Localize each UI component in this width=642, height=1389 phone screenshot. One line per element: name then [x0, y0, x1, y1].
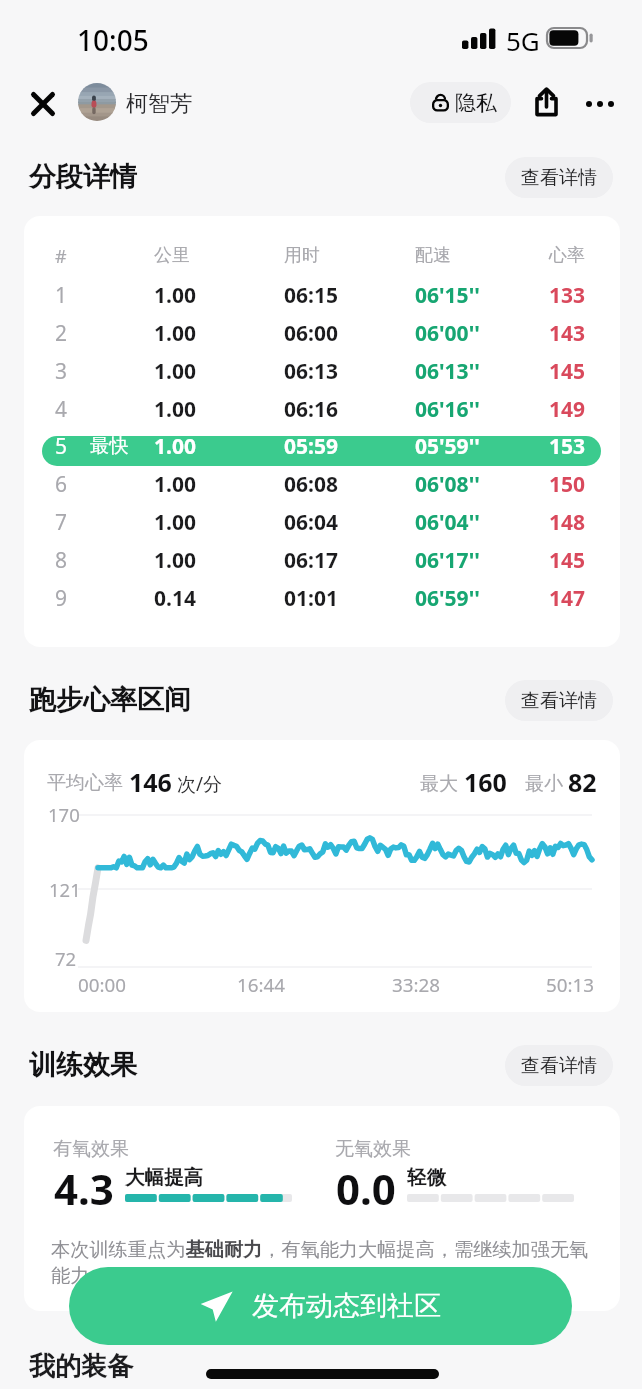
staticText: 查看详情 — [521, 689, 597, 713]
staticText: 4.3 — [54, 1160, 114, 1217]
staticText: 01:01 — [284, 584, 338, 613]
staticText: 查看详情 — [521, 1054, 597, 1078]
staticText: 8 — [55, 546, 68, 575]
staticText: 7 — [55, 508, 68, 537]
staticText: 06'16'' — [415, 395, 480, 424]
staticText: 121 — [49, 877, 81, 902]
staticText: 跑步心率区间 — [29, 683, 191, 717]
staticText: 16:44 — [237, 972, 286, 998]
staticText: 有氧效果 — [53, 1137, 129, 1161]
staticText: 5 — [55, 432, 68, 461]
button[interactable]: More options — [565, 80, 613, 128]
staticText: 用时 — [284, 244, 320, 267]
staticText: 148 — [465, 508, 585, 537]
staticText: 170 — [48, 802, 80, 827]
staticText: 1.00 — [154, 395, 196, 424]
staticText: 06'04'' — [415, 508, 480, 537]
staticText: 1 — [55, 281, 68, 310]
staticText: 配速 — [415, 244, 451, 267]
staticText: 柯智芳 — [126, 90, 192, 118]
staticText: 160 — [464, 765, 507, 799]
staticText: 153 — [465, 432, 585, 461]
staticText: 05'59'' — [415, 432, 480, 461]
staticText: 133 — [465, 281, 585, 310]
staticText: 轻微 — [407, 1165, 446, 1190]
staticText: 05:59 — [284, 432, 338, 461]
staticText: 心率 — [465, 244, 585, 267]
staticText: 训练效果 — [29, 1048, 137, 1082]
staticText: 00:00 — [78, 972, 127, 998]
staticText: 4 — [55, 395, 68, 424]
staticText: 大幅提高 — [125, 1165, 203, 1190]
staticText: 06:15 — [284, 281, 338, 310]
staticText: 无氧效果 — [335, 1137, 411, 1161]
staticText: 145 — [465, 546, 585, 575]
staticText: 次/分 — [177, 771, 223, 797]
button[interactable]: 查看详情 — [505, 157, 613, 198]
staticText: 9 — [55, 584, 68, 613]
staticText: 0.0 — [336, 1160, 396, 1217]
staticText: 1.00 — [154, 470, 196, 499]
staticText: 06'08'' — [415, 470, 480, 499]
staticText: # — [55, 244, 67, 269]
staticText: 150 — [465, 470, 585, 499]
staticText: 06'00'' — [415, 319, 480, 348]
staticText: 145 — [465, 357, 585, 386]
button[interactable]: Close — [20, 81, 65, 126]
staticText: 6 — [55, 470, 68, 499]
staticText: 50:13 — [546, 972, 595, 998]
staticText: 1.00 — [154, 508, 196, 537]
staticText: 06:04 — [284, 508, 338, 537]
staticText: 06'13'' — [415, 357, 480, 386]
staticText: 1.00 — [154, 357, 196, 386]
staticText: 06'15'' — [415, 281, 480, 310]
staticText: 平均心率 — [47, 771, 123, 795]
staticText: 最快 — [90, 433, 129, 457]
button[interactable]: Profile — [78, 83, 116, 121]
button[interactable]: 隐私 — [410, 82, 511, 123]
staticText: 本次训练重点为基础耐力，有氧能力大幅提高，需继续加强无氧能力。 — [51, 1238, 597, 1288]
staticText: 06'59'' — [415, 584, 480, 613]
staticText: 10:05 — [77, 21, 149, 59]
staticText: 06:17 — [284, 546, 338, 575]
staticText: 最大 — [420, 772, 458, 796]
staticText: 1.00 — [154, 432, 196, 461]
staticText: 3 — [55, 357, 68, 386]
staticText: 82 — [568, 765, 597, 799]
staticText: 06'17'' — [415, 546, 480, 575]
button[interactable]: 查看详情 — [505, 1045, 613, 1086]
staticText: 147 — [465, 584, 585, 613]
staticText: 146 — [129, 765, 172, 799]
staticText: 1.00 — [154, 281, 196, 310]
staticText: 06:16 — [284, 395, 338, 424]
button[interactable] — [42, 436, 601, 466]
staticText: 2 — [55, 319, 68, 348]
button[interactable]: Share — [522, 78, 570, 126]
staticText: 公里 — [154, 244, 190, 267]
staticText: 0.14 — [154, 584, 196, 613]
staticText: 隐私 — [455, 90, 497, 116]
staticText: 查看详情 — [521, 166, 597, 190]
staticText: 33:28 — [392, 972, 441, 998]
staticText: 分段详情 — [29, 160, 137, 194]
staticText: 06:00 — [284, 319, 338, 348]
staticText: 06:13 — [284, 357, 338, 386]
staticText: 72 — [55, 946, 77, 971]
staticText: 149 — [465, 395, 585, 424]
staticText: 143 — [465, 319, 585, 348]
staticText: 1.00 — [154, 319, 196, 348]
staticText: 1.00 — [154, 546, 196, 575]
staticText: 5G — [506, 23, 540, 58]
staticText: 最小 — [525, 772, 563, 796]
staticText: 06:08 — [284, 470, 338, 499]
button[interactable]: 查看详情 — [505, 680, 613, 721]
button[interactable]: 发布动态到社区 — [69, 1267, 572, 1345]
staticText: 我的装备 — [29, 1350, 133, 1383]
staticText: 发布动态到社区 — [252, 1289, 441, 1323]
